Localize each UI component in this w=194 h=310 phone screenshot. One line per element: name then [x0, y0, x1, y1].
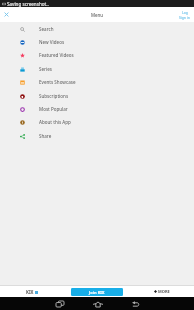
button[interactable]: Back: [130, 299, 140, 309]
button[interactable]: Sign in: [179, 10, 190, 20]
button[interactable]: About this App: [0, 115, 194, 128]
staticText: Menu: [91, 12, 104, 18]
button[interactable]: Join KIX: [71, 288, 123, 296]
button[interactable]: Home: [92, 298, 103, 309]
staticText: New Videos: [39, 39, 65, 45]
button[interactable]: Search: [0, 22, 194, 35]
button[interactable]: Most Popular: [0, 102, 194, 115]
button[interactable]: Share: [0, 129, 194, 142]
button[interactable]: New Videos: [0, 35, 194, 48]
staticText: Search: [39, 26, 54, 32]
staticText: Events Showcase: [39, 79, 76, 85]
staticText: Most Popular: [39, 106, 68, 112]
staticText: Saving screenshot..: [7, 1, 49, 7]
staticText: MORE: [158, 289, 170, 294]
staticText: Join KIX: [89, 290, 105, 295]
staticText: Share: [39, 133, 52, 139]
staticText: Featured Videos: [39, 52, 74, 58]
button[interactable]: Close: [1, 9, 12, 20]
button[interactable]: KIX: [0, 286, 64, 297]
button[interactable]: Series: [0, 62, 194, 75]
button[interactable]: Featured Videos: [0, 48, 194, 61]
staticText: Sign in: [179, 15, 190, 20]
button[interactable]: MORE: [129, 286, 194, 297]
staticText: Log: [182, 10, 188, 15]
staticText: KIX: [26, 289, 34, 295]
button[interactable]: Events Showcase: [0, 75, 194, 88]
staticText: About this App: [39, 119, 71, 125]
staticText: Subscriptions: [39, 93, 69, 99]
button[interactable]: Subscriptions: [0, 89, 194, 102]
button[interactable]: Recents: [55, 299, 65, 309]
staticText: Series: [39, 66, 52, 72]
